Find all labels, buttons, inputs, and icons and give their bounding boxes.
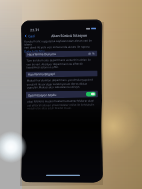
- staticText: uluşi lisbileris mualir mualarmumalinaz …: [27, 99, 95, 109]
- button[interactable]: Hazırlanma Bilgileri: [26, 70, 98, 88]
- staticText: Akan Sürücü Istasyon: [51, 33, 88, 38]
- button[interactable]: Optimizasyon Modu: [26, 90, 98, 109]
- button[interactable]: Hazırlanma Durumu: [25, 50, 97, 68]
- button[interactable]: Optimizasyon Modu toggle: [86, 92, 96, 97]
- staticText: 22.31: [30, 27, 40, 31]
- staticText: Optimizasyon Modu: [28, 93, 57, 97]
- staticText: Hazırlanma Bilgileri: [28, 72, 56, 76]
- staticText: Kurulum alıcı uygulama sayfalarından alı…: [24, 38, 99, 49]
- button[interactable]: Back: [21, 33, 38, 38]
- staticText: Tüm kurulum alıcı departmanlı verilerini…: [26, 58, 91, 68]
- other: Back: [24, 34, 27, 37]
- staticText: Geri: [28, 33, 36, 38]
- button[interactable]: Daha fazla bilgi: [24, 49, 45, 53]
- staticText: Mukasi kurulumları departmanı. yorulmala…: [27, 78, 94, 88]
- staticText: 81 %: [88, 52, 95, 56]
- staticText: Hazırlanma Durumu: [27, 52, 56, 56]
